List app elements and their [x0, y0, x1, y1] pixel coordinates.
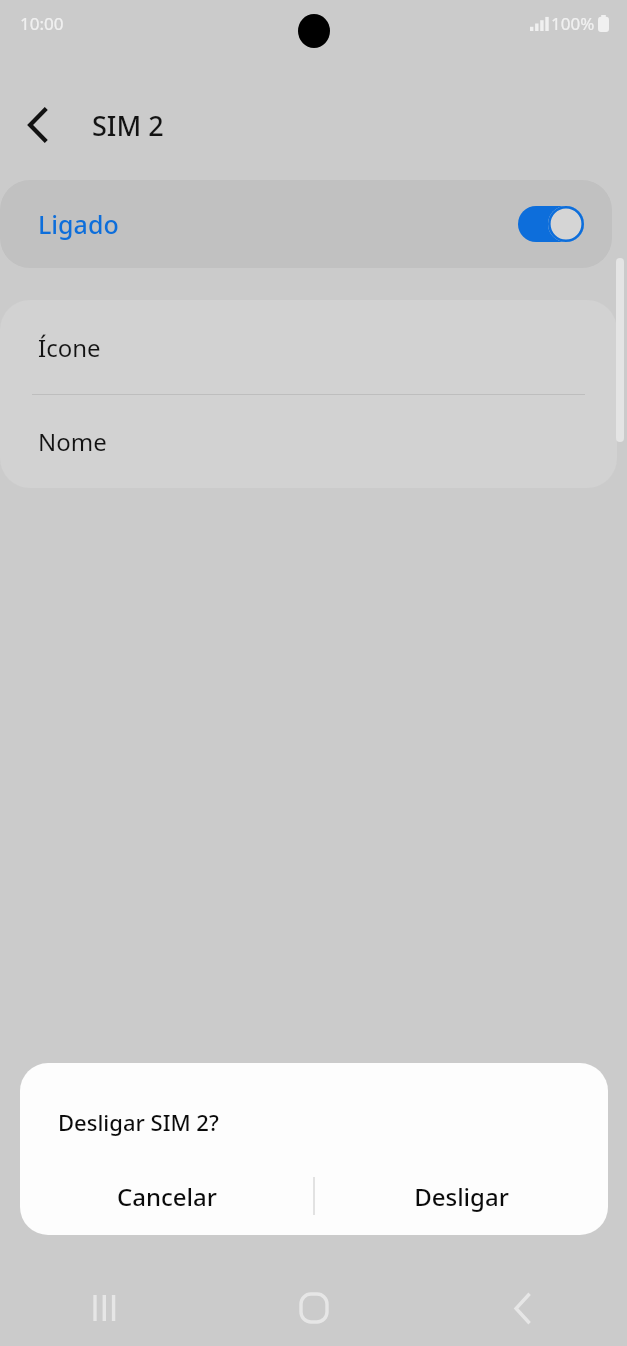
staticText: Ligado: [38, 207, 518, 241]
staticText: Desligar SIM 2?: [58, 1107, 219, 1137]
staticText: Nome: [38, 425, 107, 458]
staticText: 10:00: [20, 12, 64, 35]
staticText: Cancelar: [117, 1180, 217, 1213]
staticText: 100%: [551, 12, 595, 35]
button[interactable]: Recents: [0, 1270, 209, 1346]
button[interactable]: Ícone: [0, 300, 617, 394]
button[interactable]: SIM 2 on/off switch: [518, 206, 584, 242]
button[interactable]: Cancelar: [20, 1157, 313, 1235]
staticText: Desligar: [414, 1180, 509, 1213]
button[interactable]: Desligar: [315, 1157, 608, 1235]
button[interactable]: Back: [0, 95, 76, 155]
button[interactable]: Home: [209, 1270, 418, 1346]
button[interactable]: Ligado: [0, 180, 612, 268]
button[interactable]: Nome: [0, 395, 617, 488]
staticText: SIM 2: [92, 107, 164, 144]
staticText: Ícone: [38, 331, 101, 364]
